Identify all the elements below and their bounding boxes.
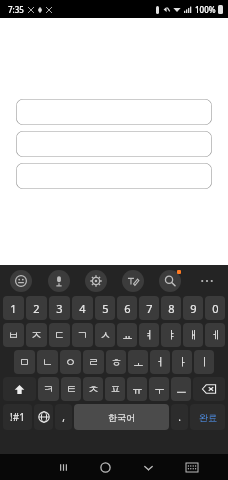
button[interactable]: ㅌ	[61, 377, 81, 401]
staticText: ㅛ	[122, 328, 133, 342]
staticText: 완료	[199, 412, 217, 423]
staticText: ㅐ	[188, 328, 199, 342]
button[interactable]: ㅣ	[194, 350, 214, 374]
staticText: ㅕ	[144, 328, 155, 342]
button[interactable]: 완료	[190, 404, 225, 430]
staticText: ㄴ	[42, 355, 53, 369]
button[interactable]: ㅁ	[14, 350, 35, 374]
button[interactable]: Handwriting	[122, 270, 144, 292]
button[interactable]: More options	[196, 270, 218, 292]
button[interactable]: 8	[161, 296, 181, 320]
button[interactable]: Shift	[3, 377, 36, 401]
staticText: ㅠ	[132, 382, 143, 396]
staticText: ㅔ	[210, 328, 221, 342]
button[interactable]: 2	[26, 296, 47, 320]
button[interactable]: ㅐ	[183, 323, 203, 347]
button[interactable]: ㅓ	[150, 350, 170, 374]
button[interactable]: 4	[72, 296, 93, 320]
staticText: 0	[212, 301, 219, 316]
staticText: ㅂ	[8, 328, 19, 342]
button[interactable]: Recents	[42, 454, 84, 480]
button[interactable]: Change language	[34, 404, 53, 430]
button[interactable]: 0	[205, 296, 225, 320]
button[interactable]: 9	[183, 296, 203, 320]
staticText: ㅌ	[66, 382, 77, 396]
staticText: ㅎ	[111, 355, 122, 369]
button[interactable]: ㅍ	[105, 377, 125, 401]
button[interactable]: 1	[3, 296, 24, 320]
button[interactable]: ,	[55, 404, 72, 430]
button[interactable]: ㅊ	[83, 377, 103, 401]
staticText: 9	[190, 301, 197, 316]
button[interactable]	[16, 99, 212, 125]
staticText: ㄷ	[54, 328, 65, 342]
staticText: 6	[124, 301, 131, 316]
button[interactable]: Emoji	[10, 270, 32, 292]
button[interactable]: ㅗ	[128, 350, 148, 374]
staticText: ,	[62, 410, 65, 424]
button[interactable]: ㄷ	[49, 323, 70, 347]
staticText: ㅊ	[88, 382, 99, 396]
staticText: .	[178, 410, 181, 424]
button[interactable]: ㅅ	[95, 323, 115, 347]
staticText: ㅈ	[31, 328, 42, 342]
button[interactable]: 3	[49, 296, 70, 320]
button[interactable]: ㅜ	[149, 377, 169, 401]
staticText: !#1	[10, 410, 25, 424]
staticText: 8	[168, 301, 175, 316]
staticText: 3	[56, 301, 63, 316]
staticText: 한국어	[108, 412, 135, 423]
staticText: 2	[33, 301, 40, 316]
button[interactable]: ㅠ	[127, 377, 147, 401]
staticText: ㅓ	[155, 355, 166, 369]
button[interactable]: 5	[95, 296, 115, 320]
button[interactable]: ㅛ	[117, 323, 137, 347]
button[interactable]: ㅈ	[26, 323, 47, 347]
staticText: ㅣ	[199, 355, 210, 369]
button[interactable]: ㅑ	[161, 323, 181, 347]
button[interactable]: ㄹ	[83, 350, 104, 374]
staticText: 100%	[195, 4, 216, 15]
staticText: ㅇ	[65, 355, 76, 369]
staticText: ㅋ	[43, 382, 54, 396]
staticText: ㅏ	[177, 355, 188, 369]
button[interactable]: !#1	[3, 404, 32, 430]
button[interactable]: ㅡ	[171, 377, 191, 401]
button[interactable]: ㅋ	[38, 377, 59, 401]
button[interactable]: Keyboard layout	[170, 454, 213, 480]
staticText: ㅡ	[176, 382, 187, 396]
button[interactable]: Home	[84, 454, 127, 480]
button[interactable]: ㅂ	[3, 323, 24, 347]
button[interactable]: ㄴ	[37, 350, 58, 374]
staticText: ㅜ	[154, 382, 165, 396]
button[interactable]	[16, 131, 212, 157]
button[interactable]: ㅎ	[106, 350, 126, 374]
button[interactable]: ㅕ	[139, 323, 159, 347]
staticText: 1	[10, 301, 17, 316]
staticText: 5	[102, 301, 109, 316]
button[interactable]: 7	[139, 296, 159, 320]
button[interactable]: Keyboard settings	[85, 270, 107, 292]
button[interactable]: Backspace	[193, 377, 225, 401]
button[interactable]: ㅔ	[205, 323, 225, 347]
button[interactable]: 6	[117, 296, 137, 320]
button[interactable]: Hide keyboard	[127, 454, 170, 480]
staticText: ㄱ	[77, 328, 88, 342]
staticText: ㄹ	[88, 355, 99, 369]
staticText: ㅅ	[100, 328, 111, 342]
staticText: 7:35	[8, 4, 24, 15]
staticText: ㅑ	[166, 328, 177, 342]
button[interactable]	[16, 163, 212, 189]
button[interactable]: Voice input	[48, 270, 70, 292]
button[interactable]: 한국어	[74, 404, 169, 430]
staticText: ㅁ	[19, 355, 30, 369]
button[interactable]: Search	[159, 270, 181, 292]
button[interactable]: ㅇ	[60, 350, 81, 374]
staticText: ㅍ	[110, 382, 121, 396]
staticText: ㅗ	[133, 355, 144, 369]
button[interactable]: ㅏ	[172, 350, 192, 374]
button[interactable]: ㄱ	[72, 323, 93, 347]
staticText: 7	[146, 301, 153, 316]
button[interactable]: .	[171, 404, 188, 430]
staticText: 4	[79, 301, 86, 316]
